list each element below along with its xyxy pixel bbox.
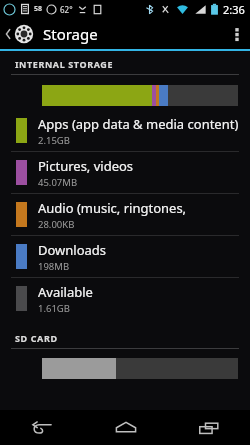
staticText: 2.15GB [38,134,70,147]
staticText: 1.61GB [38,302,70,315]
staticText: Audio (music, ringtones, podcasts) [38,199,246,217]
button[interactable]: Pictures, videos [0,152,250,194]
staticText: Pictures, videos [38,157,134,175]
staticText: 45.07MB [38,176,78,189]
button[interactable]: Recent apps [167,410,250,445]
staticText: 28.00KB [38,218,75,231]
button[interactable]: Audio (music, ringtones, podcasts) [0,194,250,236]
button[interactable]: Back [0,410,84,445]
button[interactable]: Downloads [0,236,250,278]
button[interactable]: Available [0,278,250,319]
staticText: 58 [34,4,43,14]
staticText: Available [38,283,93,301]
button[interactable]: Navigate up [0,24,36,44]
staticText: SD CARD [15,332,58,344]
staticText: INTERNAL STORAGE [15,58,114,70]
staticText: Apps (app data & media content) [38,115,239,133]
staticText: 62° [60,4,73,15]
staticText: 2:36 [223,2,245,17]
button[interactable]: Home [84,410,167,445]
button[interactable]: Apps (app data & media content) [0,110,250,152]
staticText: Storage [43,24,98,44]
staticText: 198MB [38,260,70,273]
button[interactable]: More options [224,18,250,49]
staticText: Downloads [38,241,107,259]
